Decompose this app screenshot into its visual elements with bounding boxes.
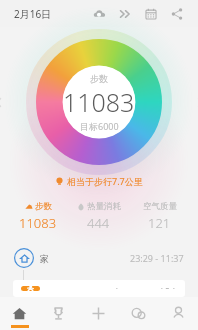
staticText: 目标6000 [80,120,119,132]
staticText: 2月16日 [14,7,52,21]
button[interactable]: 热量消耗 [68,199,129,234]
button[interactable]: 步数 [36,39,162,165]
staticText: km [116,286,127,289]
button[interactable]: Calendar [140,3,162,25]
staticText: 相当于步行7.7公里 [67,175,143,187]
staticText: 家 [40,253,49,264]
button[interactable]: Profile [158,297,198,330]
button[interactable]: 3065 [13,280,185,297]
button[interactable]: 空气质量 [129,199,190,234]
staticText: 121 [148,214,171,232]
button[interactable]: Previous day [0,92,8,112]
staticText: 空气质量 [143,201,177,212]
button[interactable]: 家 [0,246,198,270]
button[interactable]: More [114,3,136,25]
staticText: 步数 [35,201,52,212]
staticText: 11083 [63,85,135,119]
staticText: 23:29 - 11:37 [130,252,184,264]
button[interactable]: Share [166,3,188,25]
button[interactable]: Achievements [39,297,78,330]
staticText: 热量消耗 [87,201,121,212]
button[interactable]: 相当于步行7.7公里 [49,173,149,189]
staticText: 11083 [19,214,57,232]
staticText: kCal [161,286,175,289]
button[interactable]: Sync [88,3,110,25]
button[interactable]: 步数 [8,199,68,234]
staticText: 444 [87,214,110,232]
button[interactable]: Messages [118,297,158,330]
button[interactable]: Add [78,297,118,330]
button[interactable]: Home [0,297,39,330]
staticText: 步数 [90,73,108,84]
